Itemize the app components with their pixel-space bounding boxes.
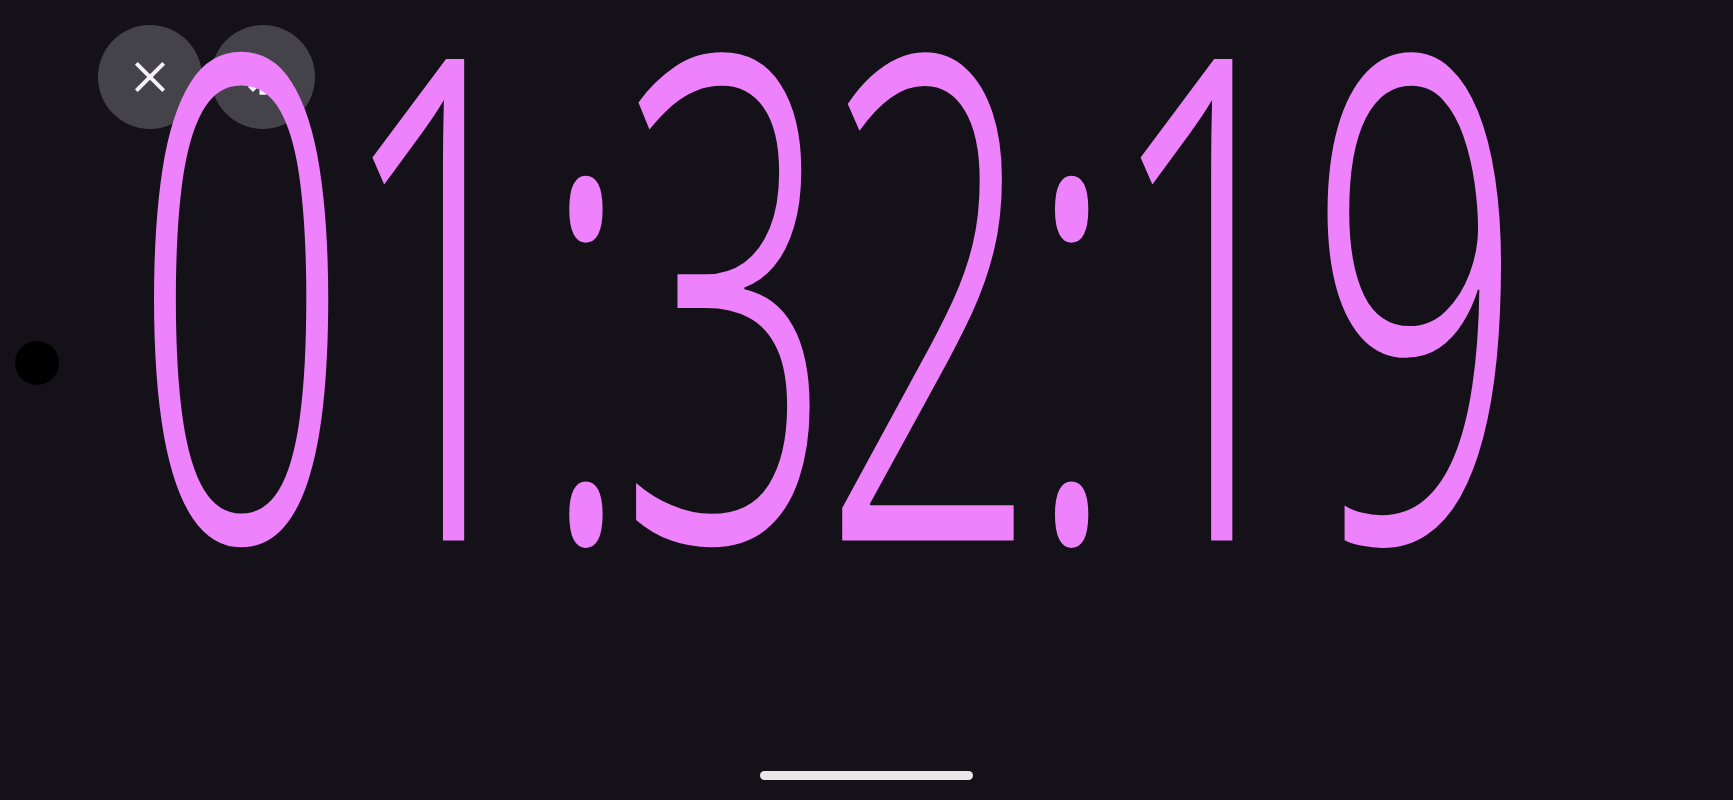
button[interactable]: Settings bbox=[211, 25, 315, 129]
button[interactable]: Close timer bbox=[98, 25, 202, 129]
button[interactable]: Remaining time 01 32 19 bbox=[0, 0, 1733, 800]
